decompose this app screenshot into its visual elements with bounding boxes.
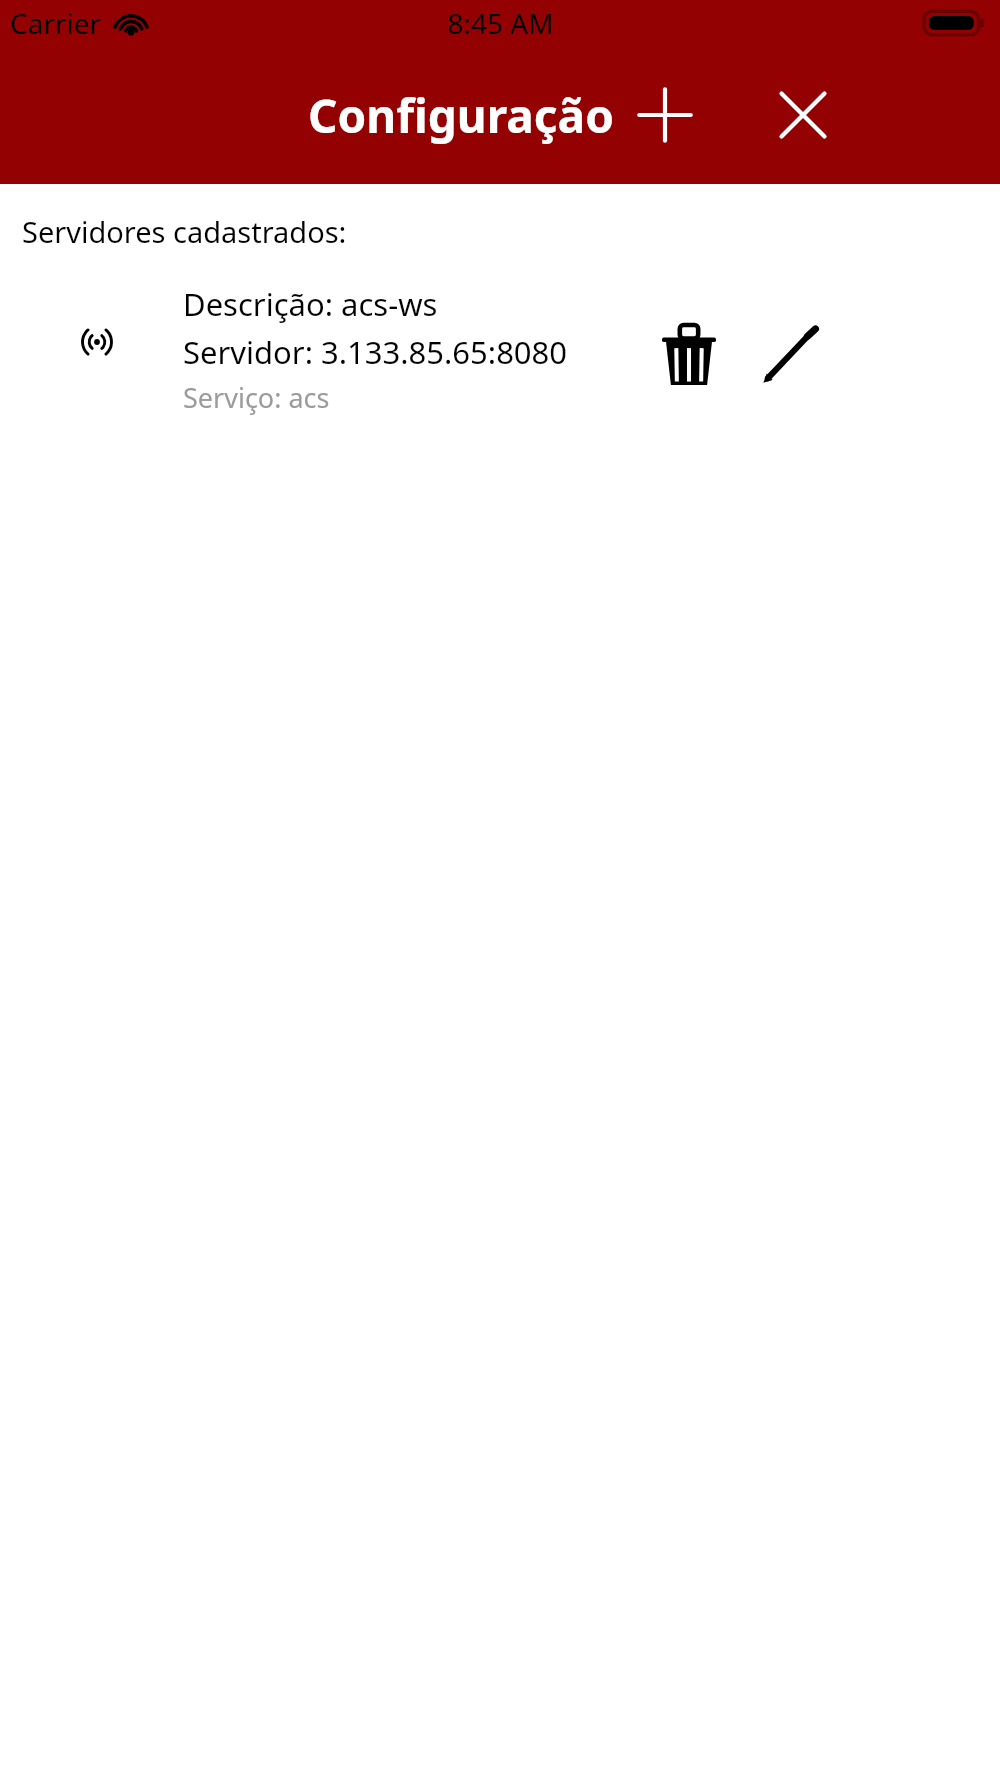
staticText: Servidor: 3.133.85.65:8080 [183,331,568,373]
button[interactable]: Servidor [0,275,1000,409]
staticText: Configuração [308,84,614,147]
staticText: Descrição: acs-ws [183,283,438,325]
other: Servidor [57,302,137,382]
button[interactable]: Editar [746,311,834,399]
staticText: Carrier [10,4,102,42]
staticText: Servidores cadastrados: [22,212,347,251]
staticText: Serviço: acs [183,379,330,416]
button[interactable]: Excluir [645,311,733,399]
staticText: 8:45 AM [447,4,554,42]
button[interactable]: Adicionar servidor [622,72,708,158]
button[interactable]: Fechar [760,72,846,158]
